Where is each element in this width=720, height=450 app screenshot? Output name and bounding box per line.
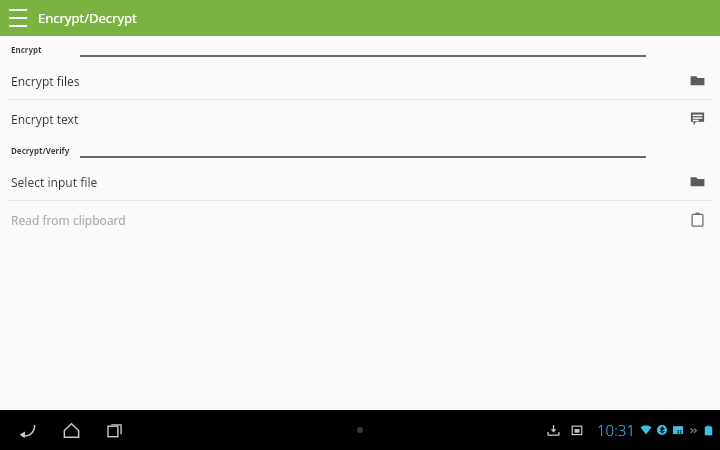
button[interactable]: Back bbox=[8, 411, 46, 449]
button[interactable]: Encrypt files bbox=[0, 62, 720, 99]
button[interactable]: Encrypt text bbox=[0, 100, 720, 137]
other: Choose folder bbox=[683, 62, 712, 99]
staticText: Read from clipboard bbox=[11, 212, 683, 228]
button[interactable]: Select input file bbox=[0, 163, 720, 200]
other: Choose folder bbox=[683, 163, 712, 200]
button[interactable]: Download notification bbox=[543, 420, 563, 440]
staticText: 10:31 bbox=[597, 420, 635, 440]
staticText: Encrypt/Decrypt bbox=[38, 9, 137, 27]
button[interactable]: Read from clipboard bbox=[0, 201, 720, 238]
button[interactable]: Recent apps bbox=[96, 411, 134, 449]
staticText: Decrypt/Verify bbox=[11, 145, 70, 156]
other: Clipboard bbox=[683, 201, 712, 238]
button[interactable]: Open navigation menu bbox=[0, 0, 36, 36]
staticText: Encrypt files bbox=[11, 73, 683, 89]
staticText: Encrypt text bbox=[11, 111, 683, 127]
button[interactable]: Home bbox=[52, 411, 90, 449]
staticText: Select input file bbox=[11, 174, 683, 190]
staticText: Encrypt bbox=[11, 44, 42, 55]
other: Enter text bbox=[683, 100, 712, 137]
